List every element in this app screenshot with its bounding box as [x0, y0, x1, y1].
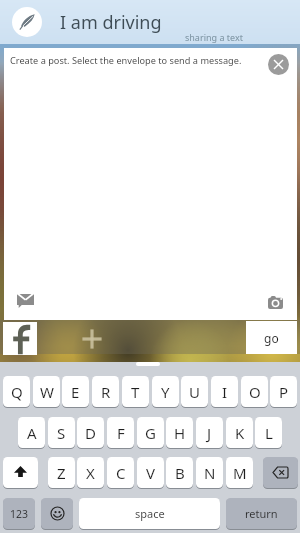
staticText: return: [245, 506, 278, 521]
staticText: R: [101, 382, 111, 402]
staticText: K: [235, 423, 245, 443]
staticText: V: [146, 463, 156, 483]
button[interactable]: [12, 7, 42, 37]
staticText: D: [85, 423, 96, 443]
staticText: S: [57, 423, 66, 443]
staticText: go: [264, 330, 279, 346]
button[interactable]: D: [77, 417, 104, 448]
button[interactable]: Z: [48, 457, 75, 488]
staticText: space: [135, 506, 165, 521]
button[interactable]: K: [226, 417, 253, 448]
button[interactable]: go: [246, 321, 297, 354]
staticText: C: [116, 463, 126, 483]
button[interactable]: U: [181, 376, 208, 407]
button[interactable]: T: [122, 376, 149, 407]
button[interactable]: O: [241, 376, 268, 407]
button[interactable]: A: [18, 417, 45, 448]
button[interactable]: Q: [3, 376, 30, 407]
staticText: E: [71, 382, 80, 402]
button[interactable]: F: [107, 417, 134, 448]
button[interactable]: P: [270, 376, 297, 407]
button[interactable]: S: [48, 417, 75, 448]
staticText: Y: [161, 382, 170, 402]
staticText: O: [249, 382, 261, 402]
button[interactable]: [264, 291, 286, 313]
button[interactable]: I: [211, 376, 238, 407]
staticText: I: [222, 382, 228, 402]
staticText: T: [131, 382, 140, 402]
staticText: M: [233, 463, 247, 483]
button[interactable]: E: [62, 376, 89, 407]
staticText: L: [265, 423, 273, 443]
staticText: X: [86, 463, 95, 483]
staticText: sharing a text: [185, 31, 243, 43]
button[interactable]: [80, 327, 103, 350]
button[interactable]: G: [137, 417, 164, 448]
button[interactable]: [3, 457, 38, 488]
button[interactable]: [13, 289, 37, 313]
staticText: F: [117, 423, 125, 443]
button[interactable]: Y: [152, 376, 179, 407]
staticText: J: [207, 423, 212, 443]
button[interactable]: X: [77, 457, 104, 488]
button[interactable]: [268, 54, 289, 75]
button[interactable]: N: [196, 457, 223, 488]
staticText: 123: [10, 507, 29, 521]
staticText: N: [204, 463, 216, 483]
button[interactable]: V: [137, 457, 164, 488]
button[interactable]: [3, 322, 37, 355]
staticText: U: [189, 382, 200, 402]
staticText: I am driving: [60, 10, 162, 35]
button[interactable]: space: [79, 498, 220, 529]
button[interactable]: M: [226, 457, 253, 488]
button[interactable]: H: [166, 417, 193, 448]
staticText: A: [27, 423, 37, 443]
button[interactable]: [263, 457, 298, 488]
button[interactable]: [41, 498, 73, 529]
button[interactable]: 123: [3, 498, 35, 529]
button[interactable]: J: [196, 417, 223, 448]
staticText: W: [40, 382, 54, 402]
staticText: Z: [57, 463, 66, 483]
button[interactable]: L: [255, 417, 282, 448]
staticText: Create a post. Select the envelope to se…: [10, 54, 242, 67]
button[interactable]: W: [33, 376, 60, 407]
button[interactable]: return: [226, 498, 297, 529]
button[interactable]: R: [92, 376, 119, 407]
staticText: H: [174, 423, 186, 443]
staticText: B: [175, 463, 185, 483]
button[interactable]: C: [107, 457, 134, 488]
button[interactable]: B: [166, 457, 193, 488]
staticText: G: [145, 423, 156, 443]
staticText: P: [279, 382, 289, 402]
staticText: Q: [11, 382, 23, 402]
